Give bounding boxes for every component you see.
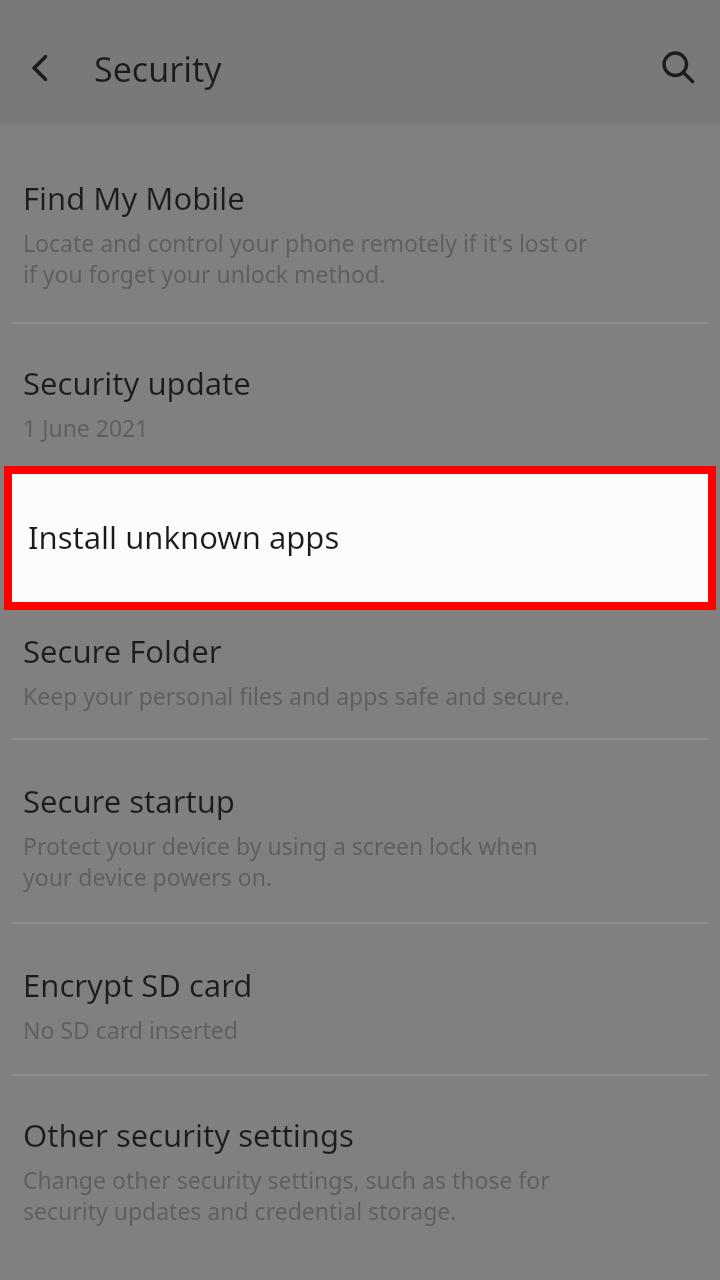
button[interactable]: Encrypt SD card bbox=[0, 924, 720, 1074]
button[interactable]: Other security settings bbox=[0, 1076, 720, 1280]
staticText: Install unknown apps bbox=[28, 516, 340, 558]
staticText: Secure Folder bbox=[23, 630, 222, 672]
staticText: No SD card inserted bbox=[23, 1014, 238, 1045]
button[interactable]: Back bbox=[8, 36, 72, 100]
button[interactable]: Security update bbox=[0, 324, 720, 466]
button[interactable]: Secure Folder bbox=[0, 612, 720, 738]
staticText: Secure startup bbox=[23, 780, 235, 822]
staticText: Locate and control your phone remotely i… bbox=[23, 227, 588, 290]
button[interactable]: Find My Mobile bbox=[0, 125, 720, 322]
staticText: Change other security settings, such as … bbox=[23, 1164, 550, 1227]
staticText: Find My Mobile bbox=[23, 177, 245, 219]
staticText: 1 June 2021 bbox=[23, 412, 149, 443]
staticText: Encrypt SD card bbox=[23, 964, 253, 1006]
staticText: Security bbox=[94, 46, 222, 92]
button[interactable]: Install unknown apps bbox=[4, 466, 716, 610]
staticText: Security update bbox=[23, 362, 251, 404]
button[interactable]: Search bbox=[646, 35, 710, 99]
staticText: Other security settings bbox=[23, 1114, 354, 1156]
staticText: Protect your device by using a screen lo… bbox=[23, 830, 538, 893]
staticText: Keep your personal files and apps safe a… bbox=[23, 680, 570, 711]
button[interactable]: Secure startup bbox=[0, 740, 720, 922]
